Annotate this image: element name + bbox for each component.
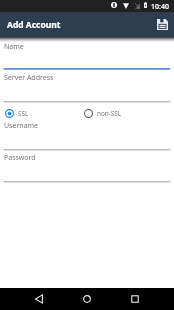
button[interactable]: Username xyxy=(0,121,174,151)
staticText: 10:40 xyxy=(151,2,169,12)
button[interactable]: Server Address xyxy=(0,73,174,103)
staticText: SSL xyxy=(18,109,29,118)
button[interactable]: Back xyxy=(20,288,58,310)
button[interactable]: Password xyxy=(0,153,174,183)
button[interactable]: Home xyxy=(68,288,106,310)
button[interactable]: Save xyxy=(152,12,172,37)
staticText: Username xyxy=(4,121,39,131)
button[interactable]: SSL xyxy=(5,105,29,121)
staticText: Name xyxy=(4,42,24,52)
button[interactable]: Recent apps xyxy=(116,288,154,310)
staticText: Add Account xyxy=(7,19,61,31)
button[interactable]: non-SSL xyxy=(84,105,122,121)
staticText: Server Address xyxy=(4,73,54,83)
staticText: Password xyxy=(4,153,36,163)
staticText: non-SSL xyxy=(97,109,122,118)
button[interactable]: Name xyxy=(0,42,174,70)
